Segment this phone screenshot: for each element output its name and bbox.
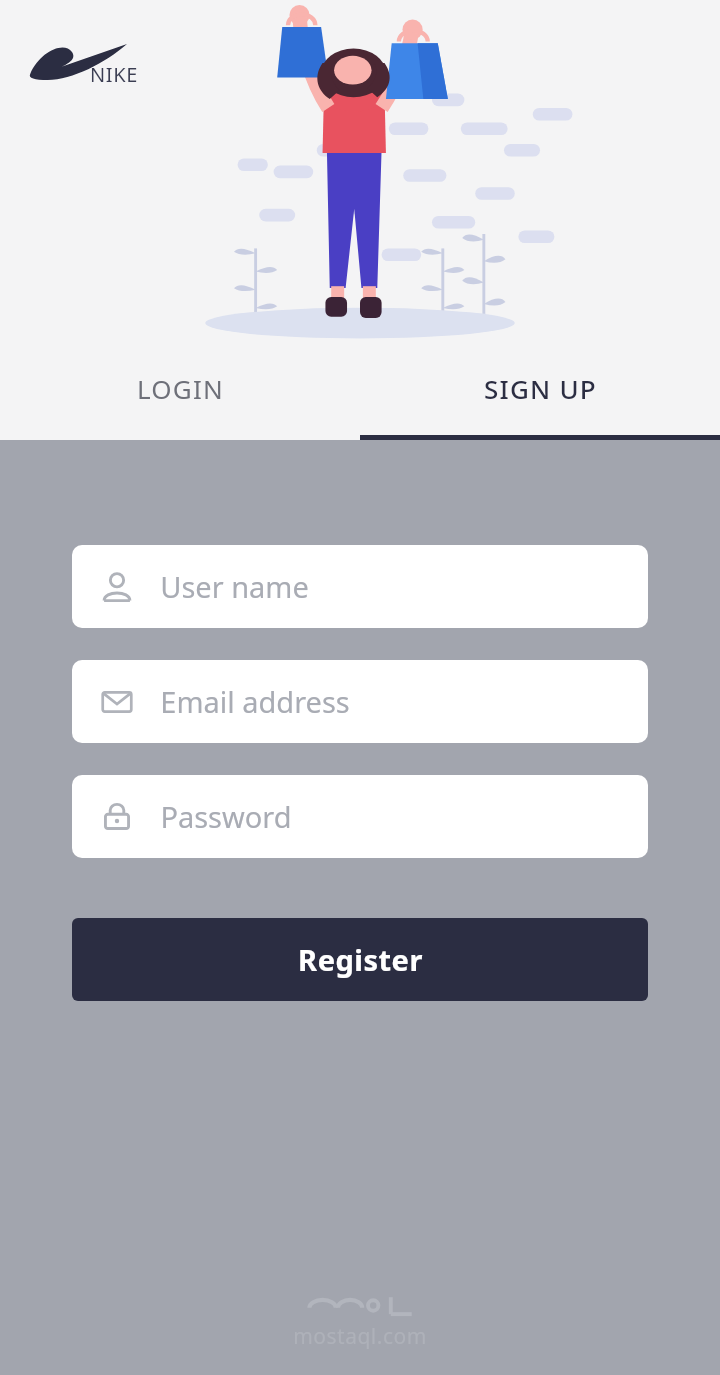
button[interactable]: User name: [72, 545, 648, 628]
staticText: SIGN UP: [484, 371, 597, 406]
staticText: Email address: [160, 682, 350, 721]
staticText: LOGIN: [137, 371, 224, 406]
staticText: NIKE: [90, 61, 138, 88]
button[interactable]: Email address: [72, 660, 648, 743]
staticText: Register: [298, 940, 423, 979]
button[interactable]: LOGIN: [0, 355, 360, 440]
button[interactable]: SIGN UP: [360, 355, 720, 440]
other: Nike logo: [28, 38, 138, 88]
button[interactable]: Password: [72, 775, 648, 858]
staticText: User name: [160, 567, 309, 606]
staticText: mostaql.com: [293, 1322, 427, 1351]
button[interactable]: Register: [72, 918, 648, 1001]
staticText: Password: [160, 797, 292, 836]
